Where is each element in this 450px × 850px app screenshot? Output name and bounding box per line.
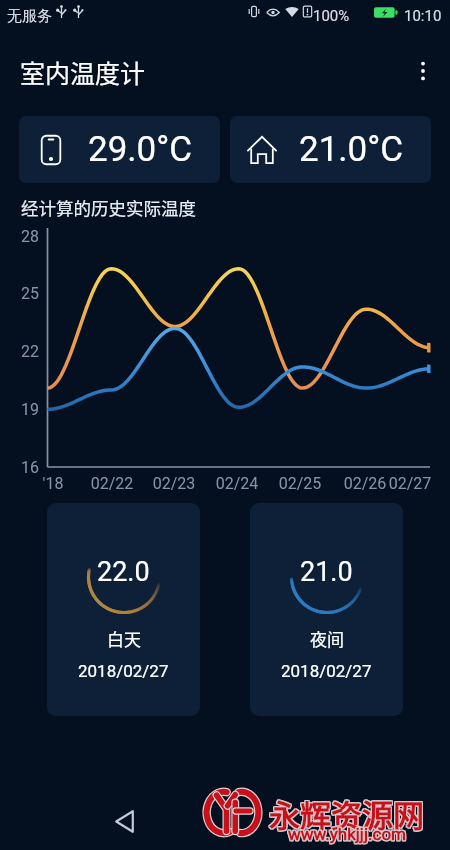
staticText: 白天 bbox=[107, 626, 141, 651]
staticText: 永辉资源网 bbox=[269, 791, 424, 836]
staticText: 2018/02/27 bbox=[78, 661, 169, 681]
staticText: 无服务 bbox=[7, 7, 52, 26]
staticText: 02/24 bbox=[207, 474, 267, 493]
staticText: 22.0 bbox=[97, 556, 150, 588]
staticText: 10:10 bbox=[404, 7, 442, 25]
staticText: 经计算的历史实际温度 bbox=[21, 195, 196, 220]
staticText: 21.0°C bbox=[299, 129, 404, 170]
staticText: www.yhkjjj.com bbox=[267, 824, 425, 844]
staticText: 永辉资源网 bbox=[269, 792, 424, 837]
button[interactable]: 21.0 bbox=[250, 503, 403, 716]
staticText: www.yhkjjj.com bbox=[267, 823, 425, 843]
staticText: 22 bbox=[16, 342, 39, 361]
staticText: '18 bbox=[23, 474, 83, 493]
staticText: 永辉资源网 bbox=[268, 790, 423, 835]
staticText: 29.0°C bbox=[88, 129, 193, 170]
staticText: 16 bbox=[16, 458, 39, 477]
staticText: www.yhkjjj.com bbox=[267, 825, 425, 845]
staticText: 永辉资源网 bbox=[268, 791, 423, 836]
button[interactable]: 21.0°C bbox=[230, 116, 431, 183]
staticText: 02/22 bbox=[82, 474, 142, 493]
staticText: 夜间 bbox=[310, 626, 344, 651]
staticText: 21.0 bbox=[300, 556, 353, 588]
button[interactable]: Back bbox=[102, 799, 147, 844]
staticText: www.yhkjjj.com bbox=[268, 823, 426, 843]
staticText: www.yhkjjj.com bbox=[269, 824, 427, 844]
staticText: 02/27 bbox=[380, 474, 440, 493]
staticText: www.yhkjjj.com bbox=[268, 824, 426, 844]
staticText: 02/25 bbox=[270, 474, 330, 493]
staticText: 永辉资源网 bbox=[269, 790, 424, 835]
staticText: www.yhkjjj.com bbox=[268, 825, 426, 845]
staticText: 02/23 bbox=[144, 474, 204, 493]
staticText: www.yhkjjj.com bbox=[269, 823, 427, 843]
staticText: 28 bbox=[16, 227, 39, 246]
staticText: 25 bbox=[16, 284, 39, 303]
button[interactable]: More options bbox=[401, 49, 445, 93]
button[interactable]: 29.0°C bbox=[19, 116, 220, 183]
staticText: 02/26 bbox=[335, 474, 395, 493]
staticText: 19 bbox=[16, 400, 39, 419]
staticText: 2018/02/27 bbox=[281, 661, 372, 681]
staticText: 永辉资源网 bbox=[270, 792, 425, 837]
button[interactable]: 22.0 bbox=[47, 503, 200, 716]
staticText: 永辉资源网 bbox=[270, 791, 425, 836]
staticText: 永辉资源网 bbox=[268, 792, 423, 837]
staticText: 永辉资源网 bbox=[270, 790, 425, 835]
staticText: www.yhkjjj.com bbox=[269, 825, 427, 845]
staticText: 100% bbox=[313, 7, 350, 25]
staticText: 室内温度计 bbox=[20, 54, 146, 90]
